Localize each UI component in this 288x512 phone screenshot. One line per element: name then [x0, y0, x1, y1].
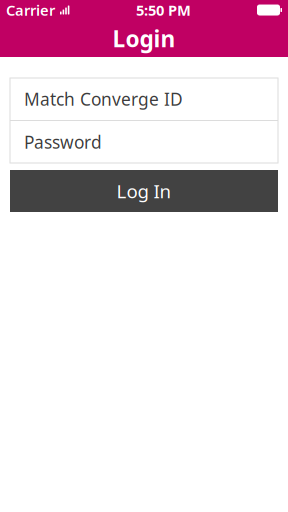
button[interactable]: Password — [10, 121, 278, 163]
staticText: 5:50 PM — [136, 0, 191, 20]
button[interactable]: Log In — [10, 170, 278, 212]
staticText: Match Converge ID — [24, 87, 183, 110]
staticText: Carrier — [6, 0, 55, 20]
staticText: Login — [112, 23, 175, 53]
staticText: Password — [24, 130, 102, 153]
staticText: Log In — [116, 179, 171, 203]
button[interactable]: Match Converge ID — [10, 78, 278, 120]
